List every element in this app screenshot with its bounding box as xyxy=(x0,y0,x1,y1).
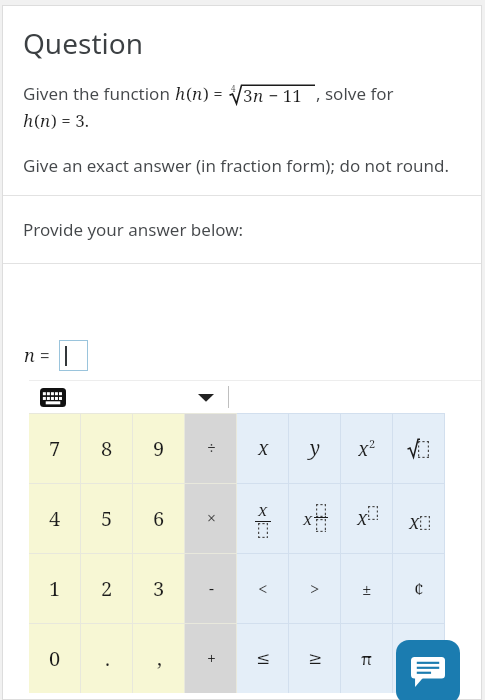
staticText: . xyxy=(105,645,110,672)
staticText: ( xyxy=(186,82,192,105)
button[interactable]: × xyxy=(185,483,237,553)
staticText: ± xyxy=(362,577,372,600)
staticText: n xyxy=(40,109,51,132)
staticText: ≤ xyxy=(256,648,271,668)
button[interactable] xyxy=(393,413,445,483)
staticText: 2 xyxy=(369,436,376,451)
button[interactable]: 4 xyxy=(29,483,81,553)
button[interactable]: > xyxy=(289,553,341,623)
button[interactable]: 7 xyxy=(29,413,81,483)
button[interactable]: ÷ xyxy=(185,413,237,483)
button[interactable] xyxy=(59,340,88,371)
button[interactable]: 1 xyxy=(29,553,81,623)
staticText: x xyxy=(357,505,368,531)
button[interactable]: y xyxy=(289,413,341,483)
staticText: n xyxy=(192,82,203,105)
staticText: ÷ xyxy=(207,437,216,459)
button[interactable]: 0 xyxy=(29,623,81,693)
staticText: ) = xyxy=(203,82,228,105)
staticText: > xyxy=(310,577,320,600)
staticText: x xyxy=(303,507,313,530)
staticText: Provide your answer below: xyxy=(23,218,244,241)
button[interactable]: < xyxy=(237,553,289,623)
button[interactable]: x xyxy=(237,483,289,553)
staticText: n xyxy=(24,343,35,368)
button[interactable]: Show more xyxy=(198,391,214,403)
button[interactable]: π xyxy=(341,623,393,693)
button[interactable]: ± xyxy=(341,553,393,623)
button[interactable]: + xyxy=(185,623,237,693)
staticText: h xyxy=(23,109,34,132)
staticText: = xyxy=(35,343,55,368)
button[interactable]: 8 xyxy=(81,413,133,483)
button[interactable]: , xyxy=(133,623,185,693)
button[interactable]: ∞ xyxy=(393,623,445,693)
staticText: 4 xyxy=(231,83,236,94)
staticText: 9 xyxy=(153,435,165,462)
staticText: 1 xyxy=(49,575,61,602)
button[interactable]: 6 xyxy=(133,483,185,553)
staticText: 2 xyxy=(101,575,113,602)
button[interactable]: - xyxy=(185,553,237,623)
staticText: x xyxy=(258,435,269,461)
staticText: h xyxy=(175,82,186,105)
staticText: < xyxy=(258,577,268,600)
staticText: Give an exact answer (in fraction form);… xyxy=(23,154,449,177)
staticText: 3 xyxy=(153,575,165,602)
staticText: Question xyxy=(23,24,143,62)
button[interactable]: Keyboard xyxy=(40,388,66,407)
staticText: 4 xyxy=(49,505,61,532)
staticText: y xyxy=(310,435,321,461)
button[interactable]: 3 xyxy=(133,553,185,623)
staticText: ( xyxy=(34,109,40,132)
button[interactable]: ¢ xyxy=(393,553,445,623)
staticText: x xyxy=(409,509,420,535)
staticText: 3 xyxy=(243,84,253,107)
staticText: , solve for xyxy=(316,82,394,105)
button[interactable]: x xyxy=(237,413,289,483)
staticText: x xyxy=(358,436,369,460)
staticText: 8 xyxy=(101,435,113,462)
staticText: , xyxy=(157,645,162,672)
staticText: − 11 xyxy=(264,84,302,107)
button[interactable]: Chat xyxy=(396,640,460,700)
staticText: 5 xyxy=(101,505,113,532)
staticText: ∞ xyxy=(412,648,427,668)
staticText: π xyxy=(361,647,373,670)
button[interactable]: x xyxy=(341,413,393,483)
staticText: 7 xyxy=(49,435,61,462)
staticText: + xyxy=(207,647,216,669)
button[interactable]: 5 xyxy=(81,483,133,553)
staticText: x xyxy=(258,498,268,521)
staticText: 6 xyxy=(153,505,165,532)
button[interactable]: 9 xyxy=(133,413,185,483)
button[interactable]: . xyxy=(81,623,133,693)
button[interactable]: 2 xyxy=(81,553,133,623)
staticText: ¢ xyxy=(414,577,424,600)
staticText: 0 xyxy=(49,645,61,672)
staticText: ) = 3. xyxy=(51,109,89,132)
staticText: ≥ xyxy=(308,648,323,668)
button[interactable]: x xyxy=(289,483,341,553)
staticText: × xyxy=(207,507,216,529)
staticText: - xyxy=(209,577,214,599)
button[interactable]: ≥ xyxy=(289,623,341,693)
staticText: n xyxy=(253,84,264,107)
staticText: Given the function xyxy=(23,82,175,105)
button[interactable]: x xyxy=(341,483,393,553)
button[interactable]: ≤ xyxy=(237,623,289,693)
button[interactable]: x xyxy=(393,483,445,553)
